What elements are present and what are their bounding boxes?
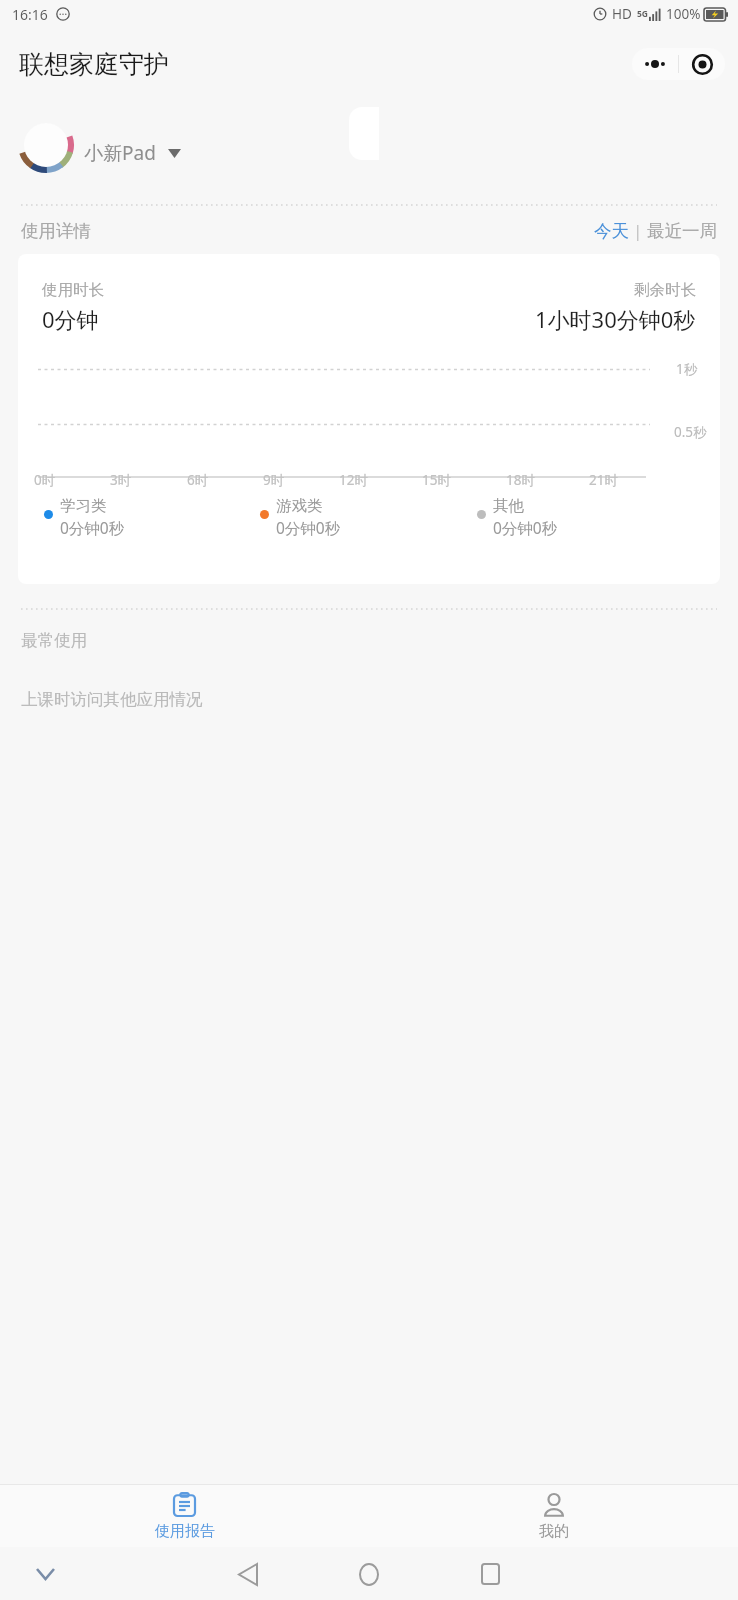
- staticText: 9时: [263, 471, 285, 489]
- staticText: 联想家庭守护: [19, 49, 169, 80]
- button[interactable]: Recent apps: [470, 1554, 510, 1594]
- staticText: 最近一周: [647, 220, 717, 242]
- staticText: 0分钟0秒: [493, 517, 558, 538]
- staticText: 6时: [187, 471, 209, 489]
- button[interactable]: Back: [228, 1554, 268, 1594]
- staticText: 12时: [339, 471, 368, 489]
- button[interactable]: 今天: [594, 220, 629, 242]
- staticText: 3时: [110, 471, 132, 489]
- staticText: 最常使用: [21, 630, 87, 651]
- staticText: 今天: [594, 220, 629, 242]
- staticText: 游戏类: [276, 496, 323, 516]
- staticText: 使用详情: [21, 220, 91, 242]
- staticText: 学习类: [60, 496, 107, 516]
- button[interactable]: Hide keyboard: [30, 1559, 60, 1589]
- staticText: 21时: [589, 471, 618, 489]
- staticText: 1小时30分钟0秒: [535, 304, 696, 334]
- staticText: 0分钟: [42, 304, 99, 334]
- staticText: 剩余时长: [634, 280, 696, 300]
- staticText: 16:16: [12, 5, 48, 24]
- staticText: 0.5秒: [674, 423, 707, 441]
- staticText: 18时: [506, 471, 535, 489]
- button[interactable]: 使用时长: [18, 254, 720, 584]
- staticText: 使用报告: [155, 1522, 215, 1541]
- staticText: HD: [612, 5, 632, 23]
- staticText: 15时: [422, 471, 451, 489]
- staticText: 0分钟0秒: [60, 517, 125, 538]
- staticText: |: [629, 220, 647, 242]
- button[interactable]: 我的: [369, 1485, 738, 1547]
- staticText: 小新Pad: [84, 140, 156, 166]
- button[interactable]: 学习类: [44, 496, 260, 538]
- staticText: 使用时长: [42, 280, 104, 300]
- button[interactable]: Close: [679, 48, 725, 80]
- staticText: 我的: [539, 1522, 569, 1541]
- button[interactable]: Home: [349, 1554, 389, 1594]
- button[interactable]: 游戏类: [260, 496, 477, 538]
- button[interactable]: 小新Pad: [0, 100, 738, 190]
- staticText: 0时: [34, 471, 56, 489]
- staticText: 100%: [666, 5, 701, 23]
- button[interactable]: More: [632, 48, 678, 80]
- staticText: 上课时访问其他应用情况: [21, 689, 203, 710]
- staticText: 5G: [637, 8, 649, 20]
- staticText: 其他: [493, 496, 524, 516]
- button[interactable]: 最近一周: [647, 220, 717, 242]
- staticText: 0分钟0秒: [276, 517, 341, 538]
- button[interactable]: 使用报告: [0, 1485, 369, 1547]
- button[interactable]: 其他: [477, 496, 694, 538]
- staticText: 1秒: [676, 360, 698, 378]
